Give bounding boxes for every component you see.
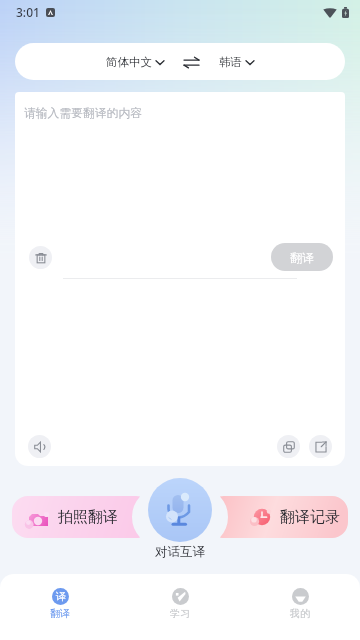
- staticText: 对话互译: [145, 544, 215, 560]
- button[interactable]: 译: [0, 574, 120, 620]
- staticText: 简体中文: [106, 55, 152, 69]
- staticText: 翻译: [50, 607, 70, 620]
- staticText: 译: [56, 590, 66, 603]
- button[interactable]: 简体中文: [102, 50, 168, 74]
- staticText: 学习: [170, 607, 190, 620]
- button[interactable]: 学习: [120, 574, 240, 620]
- staticText: 我的: [290, 607, 310, 620]
- staticText: 请输入需要翻译的内容: [24, 106, 142, 121]
- button[interactable]: Swap languages: [180, 53, 203, 72]
- button[interactable]: 翻译: [271, 243, 333, 271]
- staticText: 3:01: [16, 4, 40, 20]
- button[interactable]: Clear: [29, 246, 52, 269]
- button[interactable]: 我的: [240, 574, 360, 620]
- staticText: 韩语: [219, 55, 242, 69]
- button[interactable]: 韩语: [215, 50, 258, 74]
- staticText: 翻译记录: [280, 508, 340, 527]
- button[interactable]: Share: [309, 435, 332, 458]
- staticText: 翻译: [290, 250, 314, 265]
- button[interactable]: 翻译记录: [208, 496, 348, 538]
- staticText: 拍照翻译: [58, 508, 118, 527]
- button[interactable]: 拍照翻译: [12, 496, 152, 538]
- button[interactable]: Copy: [277, 435, 300, 458]
- button[interactable]: Conversation translate: [148, 478, 212, 542]
- button[interactable]: Speak: [28, 435, 51, 458]
